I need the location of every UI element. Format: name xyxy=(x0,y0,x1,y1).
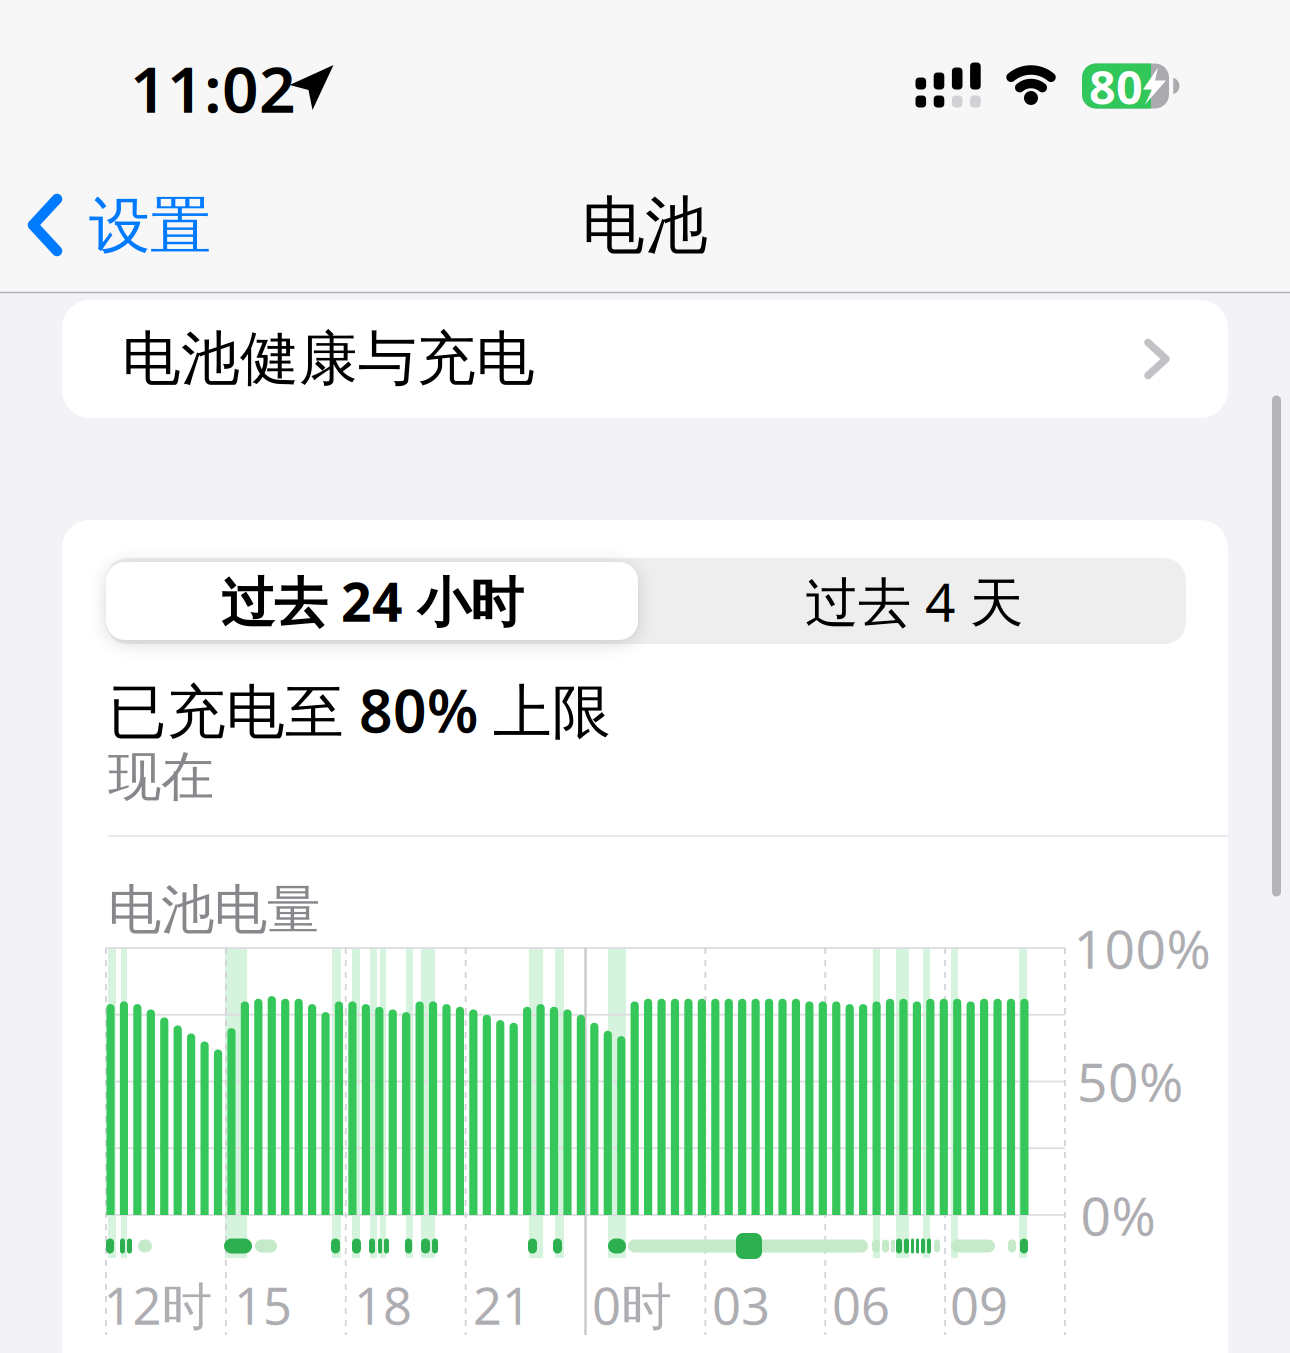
staticText: 11:02 xyxy=(130,45,296,130)
staticText: 80 xyxy=(1089,55,1143,117)
staticText: 过去 24 小时 xyxy=(221,566,523,636)
staticText: 18 xyxy=(354,1271,412,1339)
staticText: 21 xyxy=(473,1271,531,1339)
staticText: 电池健康与充电 xyxy=(122,323,535,395)
staticText: 03 xyxy=(712,1271,770,1339)
staticText: 06 xyxy=(832,1271,890,1339)
staticText: 100% xyxy=(1073,913,1210,983)
staticText: 0时 xyxy=(592,1271,672,1339)
staticText: 现在 xyxy=(108,744,214,810)
button[interactable]: 电池健康与充电 xyxy=(62,300,1228,418)
staticText: 09 xyxy=(950,1271,1008,1339)
button[interactable]: 过去 24 小时 xyxy=(102,558,642,644)
staticText: 电池电量 xyxy=(108,877,320,943)
staticText: 0% xyxy=(1080,1180,1155,1250)
staticText: 过去 4 天 xyxy=(805,566,1023,636)
button[interactable]: 过去 4 天 xyxy=(644,558,1184,644)
button[interactable]: 设置 xyxy=(29,188,211,264)
staticText: 设置 xyxy=(89,188,211,264)
staticText: 50% xyxy=(1077,1046,1183,1116)
staticText: 已充电至 80% 上限 xyxy=(108,671,611,749)
staticText: 15 xyxy=(234,1271,292,1339)
staticText: 12时 xyxy=(103,1271,212,1339)
staticText: 电池 xyxy=(582,187,708,264)
